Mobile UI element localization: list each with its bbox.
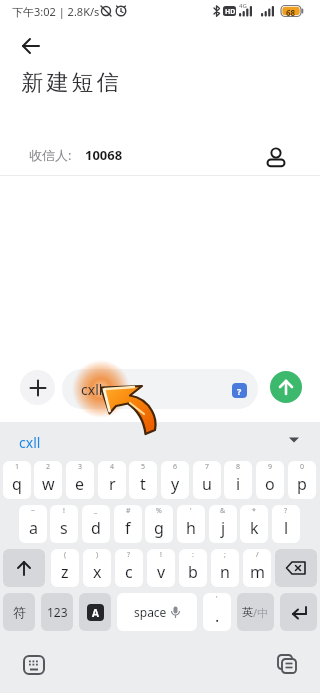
button[interactable] [280, 593, 317, 631]
staticText: v [157, 561, 166, 583]
button[interactable]: 123 [41, 593, 73, 631]
button[interactable] [62, 369, 258, 409]
staticText: e [75, 473, 85, 495]
staticText: 0 [300, 462, 305, 472]
staticText: 9 [268, 462, 273, 472]
button[interactable]: / [243, 549, 271, 587]
button[interactable]: 7 [193, 461, 221, 499]
staticText: 5 [141, 462, 146, 472]
staticText: m [250, 561, 265, 583]
button[interactable]: 英 [237, 593, 274, 631]
staticText: u [202, 473, 212, 495]
staticText: 4 [110, 462, 115, 472]
staticText: d [91, 517, 101, 539]
staticText: 下午3:02 | 2.8K/s [12, 4, 100, 19]
staticText: y [171, 473, 180, 495]
staticText: 符 [13, 604, 26, 620]
staticText: 1 [15, 462, 20, 472]
button[interactable]: ~ [19, 505, 47, 543]
staticText: * [252, 506, 256, 516]
button[interactable]: ! [147, 549, 175, 587]
staticText: n [220, 561, 230, 583]
button[interactable]: & [209, 505, 237, 543]
button[interactable]: : [179, 549, 207, 587]
staticText: ! [160, 550, 162, 560]
staticText: ) [96, 550, 99, 560]
button[interactable]: 6 [161, 461, 189, 499]
button[interactable]: 9 [256, 461, 284, 499]
staticText: : [192, 550, 194, 560]
staticText: 7 [205, 462, 210, 472]
staticText: c [125, 561, 133, 583]
button[interactable]: 8 [224, 461, 252, 499]
button[interactable]: cxll [0, 424, 320, 458]
button[interactable]: ' [177, 505, 205, 543]
button[interactable]: 符 [3, 593, 35, 631]
button[interactable]: * [240, 505, 268, 543]
staticText: 8 [236, 462, 241, 472]
staticText: /中 [253, 605, 269, 620]
button[interactable] [20, 370, 55, 405]
button[interactable]: 5 [129, 461, 157, 499]
staticText: 10068 [85, 146, 123, 164]
button[interactable]: ( [51, 549, 79, 587]
staticText: A [92, 606, 99, 620]
button[interactable] [275, 549, 317, 587]
staticText: ( [64, 550, 67, 560]
staticText: s [60, 517, 68, 539]
button[interactable]: # [114, 505, 142, 543]
button[interactable] [14, 32, 46, 60]
button[interactable]: % [145, 505, 173, 543]
staticText: b [188, 561, 198, 583]
button[interactable]: ! [50, 505, 78, 543]
staticText: h [186, 517, 196, 539]
staticText: _ [94, 506, 98, 516]
button[interactable]: 3 [66, 461, 94, 499]
staticText: ? [127, 550, 131, 560]
staticText: o [265, 473, 275, 495]
staticText: w [42, 473, 55, 495]
button[interactable] [272, 650, 304, 678]
button[interactable]: ; [211, 549, 239, 587]
staticText: ! [63, 506, 65, 516]
button[interactable]: 0 [288, 461, 316, 499]
button[interactable]: ) [83, 549, 111, 587]
staticText: / [256, 550, 259, 560]
staticText: 6 [173, 462, 178, 472]
button[interactable] [270, 371, 302, 403]
staticText: ; [224, 550, 226, 560]
button[interactable]: 1 [3, 461, 31, 499]
staticText: l [284, 517, 289, 539]
button[interactable] [18, 650, 50, 678]
button[interactable]: _ [82, 505, 110, 543]
staticText: k [250, 517, 259, 539]
staticText: 3 [78, 462, 83, 472]
staticText: 68 [286, 7, 296, 18]
staticText: f [125, 517, 131, 539]
staticText: j [221, 517, 226, 539]
staticText: cxll [81, 380, 103, 399]
staticText: cxll [19, 433, 41, 452]
staticText: 英 [242, 605, 253, 619]
staticText: 新建短信 [20, 69, 120, 97]
staticText: g [154, 517, 164, 539]
button[interactable] [3, 549, 45, 587]
staticText: q [12, 473, 22, 495]
button[interactable]: A [79, 593, 111, 631]
button[interactable]: 2 [34, 461, 62, 499]
button[interactable]: ' [203, 593, 231, 631]
staticText: . [215, 605, 220, 627]
button[interactable]: ? [272, 505, 300, 543]
staticText: ~ [31, 506, 36, 516]
staticText: 4G [239, 2, 247, 10]
button[interactable]: 4 [98, 461, 126, 499]
staticText: z [61, 561, 69, 583]
staticText: % [156, 506, 162, 516]
staticText: t [140, 473, 146, 495]
button[interactable]: 收信人: [0, 138, 320, 174]
button[interactable]: ? [115, 549, 143, 587]
staticText: x [93, 561, 102, 583]
button[interactable]: space [117, 593, 197, 631]
staticText: ' [190, 506, 192, 516]
staticText: 2 [46, 462, 51, 472]
